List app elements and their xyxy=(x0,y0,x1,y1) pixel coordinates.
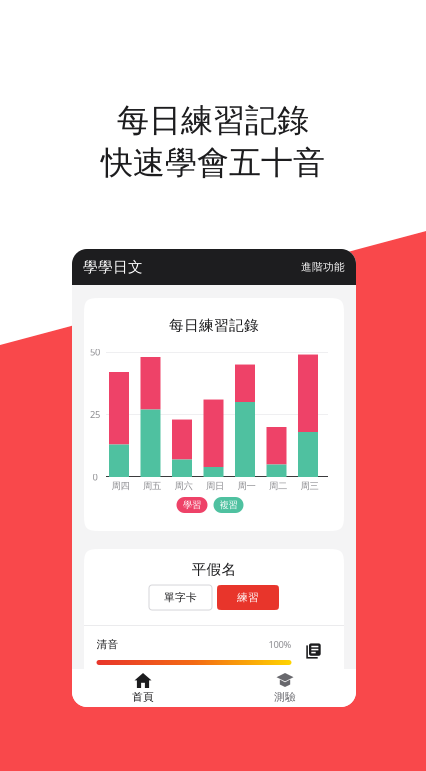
staticText: 100% xyxy=(268,638,291,651)
staticText: 學學日文 xyxy=(83,258,143,276)
staticText: 平假名 xyxy=(191,560,236,578)
staticText: 周五 xyxy=(143,480,161,492)
staticText: 測驗 xyxy=(274,690,296,703)
button[interactable]: 進階功能 xyxy=(301,249,345,285)
staticText: 清音 xyxy=(96,638,118,651)
staticText: 複習 xyxy=(219,499,237,511)
staticText: 學習 xyxy=(183,499,201,511)
button[interactable]: 首頁 xyxy=(72,669,214,707)
staticText: 周六 xyxy=(174,480,192,492)
staticText: 25 xyxy=(90,408,100,421)
staticText: 0 xyxy=(92,471,97,483)
staticText: 周二 xyxy=(269,480,287,492)
staticText: 快速學會五十音 xyxy=(101,143,325,183)
button[interactable]: 單字卡列表 xyxy=(304,638,321,664)
staticText: 周三 xyxy=(300,480,318,492)
staticText: 進階功能 xyxy=(301,260,345,273)
staticText: 練習 xyxy=(237,591,259,604)
staticText: 周四 xyxy=(111,480,129,492)
button[interactable]: 單字卡 xyxy=(149,585,212,610)
staticText: 單字卡 xyxy=(164,591,197,604)
staticText: 每日練習記錄 xyxy=(117,101,309,140)
staticText: 周日 xyxy=(206,480,224,492)
button[interactable]: 測驗 xyxy=(214,669,356,707)
button[interactable]: 練習 xyxy=(217,585,279,610)
staticText: 每日練習記錄 xyxy=(169,316,259,334)
staticText: 50 xyxy=(90,346,100,358)
staticText: 首頁 xyxy=(132,690,154,703)
staticText: 周一 xyxy=(237,480,255,492)
